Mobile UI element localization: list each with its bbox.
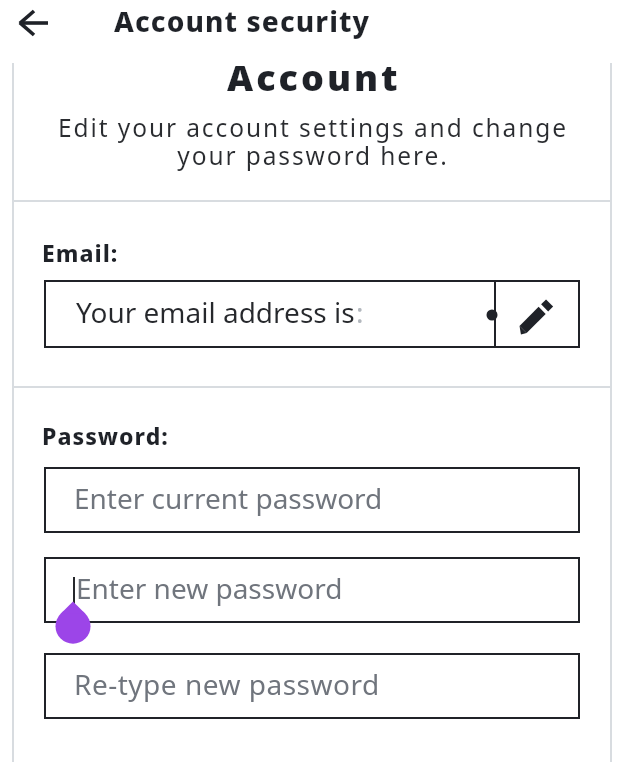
staticText: Enter current password bbox=[74, 479, 383, 517]
staticText: Re-type new password bbox=[74, 665, 380, 703]
button[interactable]: Re-type new password bbox=[44, 653, 580, 719]
staticText: Enter new password bbox=[76, 569, 343, 607]
staticText: Account bbox=[227, 53, 401, 102]
staticText: : bbox=[356, 293, 364, 331]
staticText: Email: bbox=[42, 237, 119, 268]
button[interactable] bbox=[496, 280, 580, 348]
button[interactable]: Enter current password bbox=[44, 467, 580, 533]
button[interactable] bbox=[13, 1, 55, 45]
staticText: Account security bbox=[114, 2, 371, 40]
staticText: Edit your account settings and change yo… bbox=[58, 111, 568, 172]
staticText: Password: bbox=[42, 420, 169, 451]
staticText: Your email address is bbox=[76, 293, 355, 331]
button[interactable]: Enter new password bbox=[44, 557, 580, 623]
